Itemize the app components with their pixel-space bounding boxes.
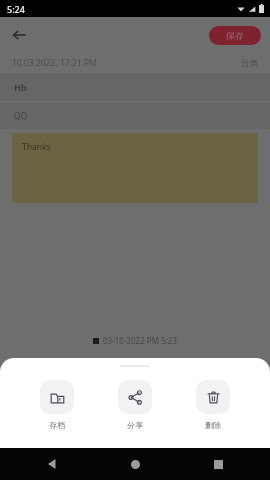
staticText: 10.03.2022, 17:21 PM — [12, 57, 97, 69]
button[interactable]: 保存 — [209, 26, 261, 45]
staticText: 5:24 — [7, 3, 25, 15]
staticText: 删除 — [205, 420, 221, 430]
staticText: 存档 — [49, 420, 65, 430]
staticText: 分类 — [241, 58, 258, 69]
button[interactable]: 存档 — [36, 378, 78, 432]
button[interactable]: Back — [40, 452, 64, 476]
button[interactable]: Back — [6, 22, 32, 48]
staticText: Thanks — [22, 141, 51, 153]
staticText: Hb — [14, 81, 27, 93]
staticText: 分享 — [127, 420, 143, 430]
staticText: QQ — [14, 110, 28, 122]
button[interactable]: Recents — [206, 452, 230, 476]
button[interactable]: 分享 — [114, 378, 156, 432]
button[interactable]: 删除 — [192, 378, 234, 432]
button[interactable]: 分类 — [241, 58, 258, 69]
staticText: 保存 — [226, 30, 244, 41]
staticText: 03-10-2022 PM 5:23 — [103, 335, 177, 346]
button[interactable]: Home — [123, 452, 147, 476]
